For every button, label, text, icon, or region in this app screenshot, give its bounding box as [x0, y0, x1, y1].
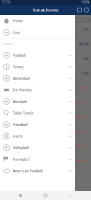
staticText: 17:31	[2, 1, 11, 4]
button[interactable]: Tennis	[0, 61, 75, 73]
staticText: 18:00 Uhr	[76, 130, 87, 133]
button[interactable]: Football	[0, 49, 75, 61]
staticText: 19:00 Uhr	[76, 159, 87, 163]
staticText: Volleyball	[13, 145, 29, 150]
staticText: Basketball	[13, 76, 30, 81]
button[interactable]: Handball	[0, 119, 75, 130]
button[interactable]: American Football	[0, 165, 75, 177]
button[interactable]: Home	[0, 15, 75, 27]
staticText: 100%	[81, 1, 89, 4]
button[interactable]: Calendar	[78, 8, 82, 12]
button[interactable]: Live	[0, 27, 75, 38]
button[interactable]: Back	[66, 191, 75, 200]
staticText: SPORTS	[4, 42, 13, 46]
staticText: Formula 1	[13, 157, 30, 162]
staticText: ‹	[69, 192, 71, 199]
staticText: Darts	[13, 134, 23, 139]
button[interactable]: Table Tennis	[0, 107, 75, 119]
staticText: Ice Hockey	[13, 87, 32, 92]
staticText: 18:30 Uhr	[76, 145, 87, 148]
staticText: 1.20	[82, 71, 89, 76]
staticText: Baseball	[13, 99, 27, 104]
staticText: 2.6	[84, 27, 89, 32]
button[interactable]: Darts	[0, 130, 75, 142]
button[interactable]: Ice Hockey	[0, 84, 75, 96]
button[interactable]: Baseball	[0, 96, 75, 107]
button[interactable]: Basketball	[0, 73, 75, 84]
staticText: 17:30 Uhr	[76, 86, 87, 90]
staticText: 18:00 Uhr	[76, 115, 87, 119]
staticText: bet-at-home	[33, 7, 58, 13]
staticText: 17:30 Uhr	[76, 101, 87, 104]
staticText: TABLE TE	[76, 18, 84, 22]
button[interactable]: Help	[82, 8, 88, 12]
staticText: Football	[13, 53, 26, 58]
staticText: American Football	[13, 168, 43, 173]
button[interactable]: Recents	[16, 191, 25, 200]
staticText: 9.0	[84, 57, 89, 61]
staticText: Handball	[13, 122, 28, 127]
staticText: Tennis	[13, 64, 24, 69]
staticText: Live	[13, 30, 20, 35]
staticText: Table Tennis	[13, 110, 34, 116]
staticText: 80.00	[80, 42, 89, 46]
button[interactable]: Formula 1	[0, 153, 75, 165]
button[interactable]: Volleyball	[0, 142, 75, 153]
button[interactable]: Home	[41, 191, 50, 200]
staticText: Home	[13, 18, 23, 23]
